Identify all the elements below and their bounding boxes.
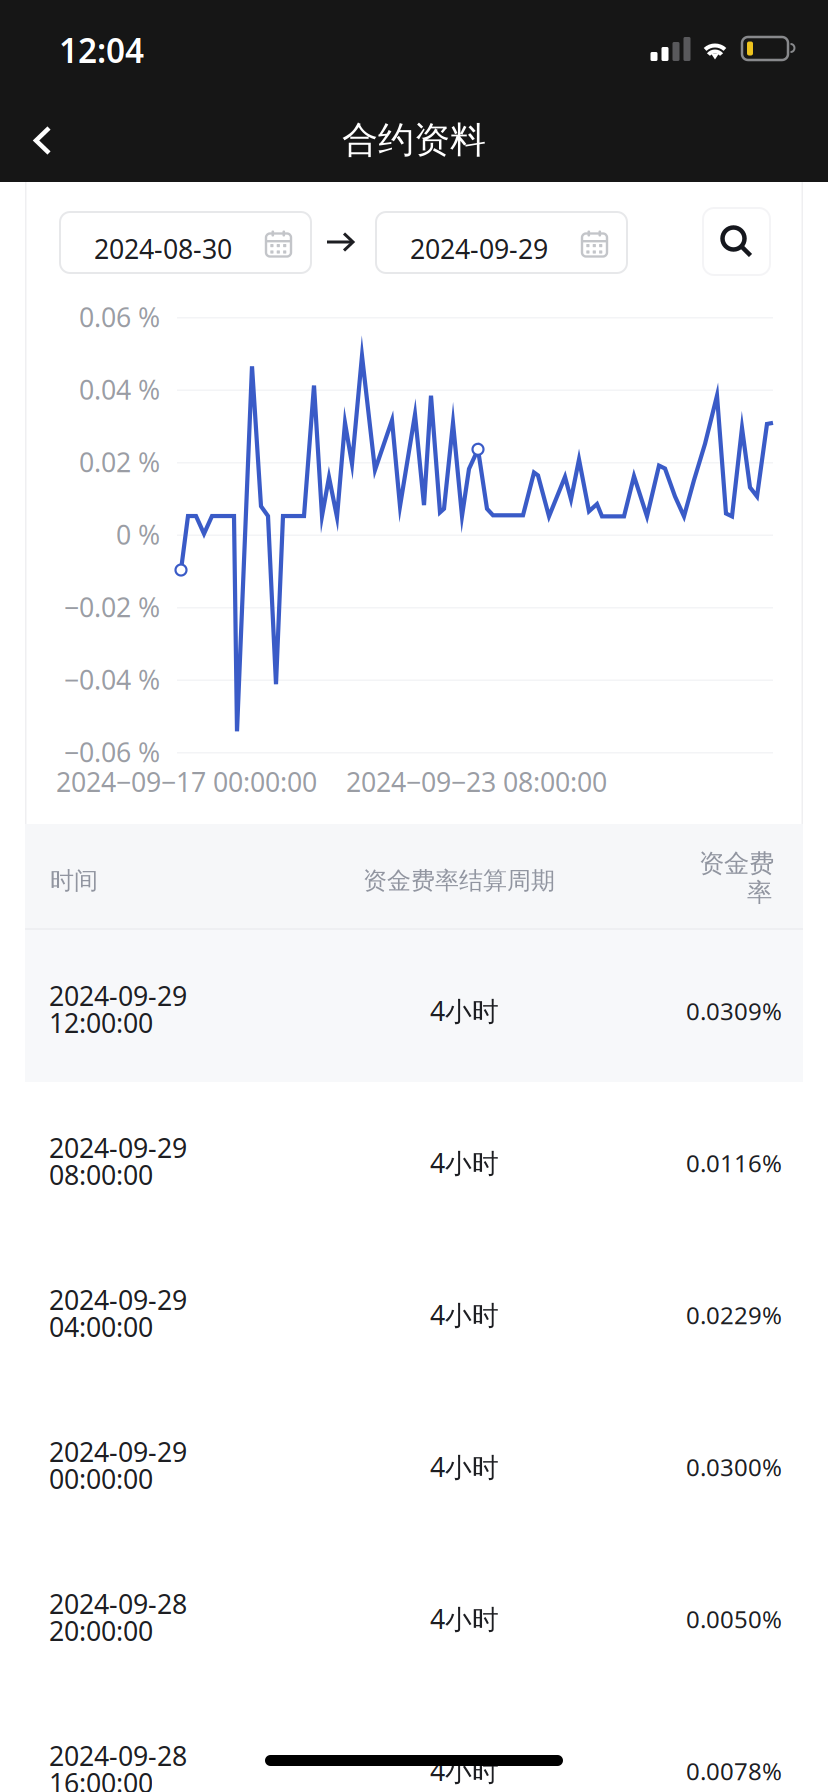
staticText: 4小时	[430, 1753, 499, 1788]
staticText: 0.0078%	[686, 1755, 782, 1787]
staticText: 2024−09−17 00:00:00	[56, 764, 317, 799]
staticText: 2024-09-29	[49, 1130, 187, 1165]
button[interactable]: 2024-09-29	[0, 1386, 828, 1538]
staticText: 0.02 %	[79, 444, 160, 480]
button[interactable]: 2024-08-30	[60, 212, 311, 273]
staticText: 0.04 %	[79, 372, 160, 407]
staticText: −0.02 %	[64, 589, 160, 625]
staticText: 20:00:00	[49, 1613, 153, 1648]
button[interactable]: 2024-09-28	[0, 1538, 828, 1690]
button[interactable]: 2024-09-29	[0, 1082, 828, 1234]
staticText: 2024−09−23 08:00:00	[346, 764, 607, 799]
staticText: 2024-09-28	[49, 1738, 187, 1773]
staticText: 2024-09-28	[49, 1586, 187, 1621]
staticText: 资金费	[699, 848, 774, 879]
staticText: 2024-09-29	[49, 1434, 187, 1469]
staticText: 0.0050%	[686, 1603, 782, 1635]
staticText: 2024-08-30	[94, 231, 232, 266]
staticText: 2024-09-29	[49, 978, 187, 1013]
staticText: 0.0300%	[686, 1451, 782, 1483]
button[interactable]: 2024-09-29	[0, 1234, 828, 1386]
staticText: 16:00:00	[49, 1765, 153, 1792]
staticText: 4小时	[430, 1449, 499, 1484]
staticText: 合约资料	[342, 118, 486, 162]
staticText: 12:04	[59, 28, 144, 72]
staticText: 12:00:00	[49, 1005, 153, 1040]
staticText: 0.0116%	[686, 1147, 782, 1179]
button[interactable]: Back	[0, 88, 86, 182]
button[interactable]: 2024-09-29	[376, 212, 627, 273]
staticText: 04:00:00	[49, 1309, 153, 1344]
button[interactable]: 2024-09-29	[0, 930, 828, 1082]
staticText: −0.04 %	[64, 662, 160, 697]
staticText: 资金费率结算周期	[363, 866, 555, 895]
staticText: 率	[747, 877, 772, 908]
staticText: 0.06 %	[79, 299, 160, 335]
staticText: 4小时	[430, 993, 499, 1028]
staticText: −0.06 %	[64, 734, 160, 770]
button[interactable]: Search	[703, 208, 770, 275]
staticText: 0 %	[116, 517, 160, 552]
staticText: 0.0229%	[686, 1299, 782, 1331]
staticText: 00:00:00	[49, 1461, 153, 1496]
staticText: 4小时	[430, 1145, 499, 1180]
staticText: 2024-09-29	[410, 231, 548, 266]
staticText: 时间	[50, 866, 98, 895]
staticText: 4小时	[430, 1297, 499, 1332]
staticText: 2024-09-29	[49, 1282, 187, 1317]
staticText: 08:00:00	[49, 1157, 153, 1192]
staticText: 0.0309%	[686, 995, 782, 1027]
button[interactable]: 2024-09-28	[0, 1690, 828, 1792]
staticText: 4小时	[430, 1601, 499, 1636]
